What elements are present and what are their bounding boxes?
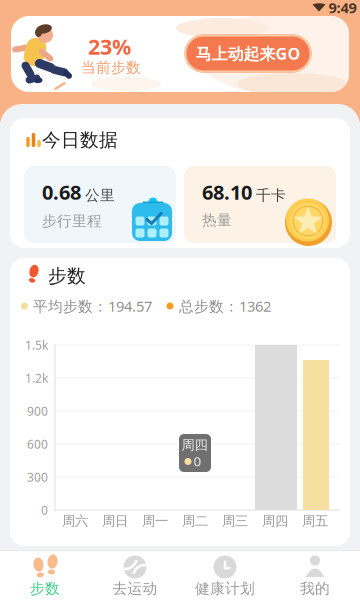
staticText: 总步数：1362 [179,296,271,316]
staticText: 0 [193,452,201,470]
staticText: 23% [88,32,131,61]
staticText: 周日 [102,513,128,529]
staticText: 600 [27,436,48,452]
staticText: 平均步数：194.57 [33,296,152,316]
staticText: 周六 [62,513,88,529]
staticText: 热量 [202,211,232,229]
staticText: 1.2k [25,370,48,386]
staticText: 周一 [142,513,168,529]
staticText: 1.5k [25,337,48,353]
staticText: 0 [41,502,48,518]
staticText: 300 [27,469,48,485]
staticText: 周四 [262,513,288,529]
staticText: 我的 [300,579,330,597]
button[interactable]: 马上动起来GO [182,32,314,74]
staticText: 步行里程 [42,212,102,230]
button[interactable]: 我的 [270,550,360,600]
button[interactable]: 步数 [0,550,90,600]
staticText: 步数 [30,579,60,597]
staticText: 公里 [85,186,115,204]
staticText: 周三 [222,513,248,529]
staticText: 9:49 [328,0,356,17]
staticText: 周二 [182,513,208,529]
staticText: 今日数据 [42,128,118,151]
staticText: 68.10 [202,179,252,205]
staticText: 周四 [181,437,207,453]
staticText: 周五 [302,513,328,529]
staticText: 步数 [48,264,86,287]
staticText: 去运动 [112,579,157,597]
staticText: 千卡 [256,186,286,204]
staticText: 马上动起来GO [195,43,300,64]
staticText: 当前步数 [81,58,141,76]
staticText: 900 [27,403,48,419]
staticText: 健康计划 [195,579,255,597]
button[interactable]: 去运动 [90,550,180,600]
button[interactable]: 健康计划 [180,550,270,600]
staticText: 0.68 [42,179,81,205]
